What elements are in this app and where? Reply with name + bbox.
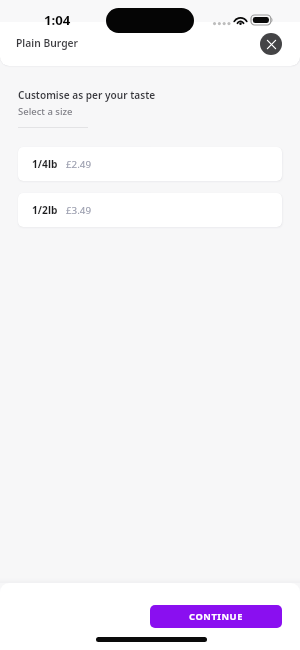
- staticText: 1/4lb: [32, 157, 58, 171]
- staticText: Customise as per your taste: [18, 88, 156, 102]
- staticText: Select a size: [18, 105, 73, 118]
- button[interactable]: Close: [260, 33, 282, 55]
- staticText: 1/2lb: [32, 203, 58, 217]
- button[interactable]: 1/2lb: [18, 193, 282, 227]
- button[interactable]: 1/4lb: [18, 147, 282, 181]
- staticText: £2.49: [66, 158, 92, 171]
- button[interactable]: CONTINUE: [150, 605, 282, 628]
- staticText: £3.49: [66, 204, 92, 217]
- staticText: Plain Burger: [16, 36, 79, 50]
- staticText: 1:04: [44, 11, 71, 29]
- staticText: CONTINUE: [189, 610, 243, 623]
